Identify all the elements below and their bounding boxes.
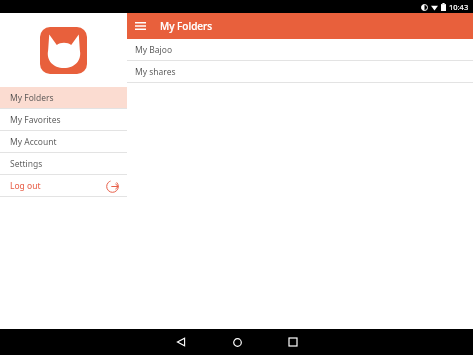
other: Log out xyxy=(105,179,119,193)
staticText: My Folders xyxy=(160,19,213,33)
button[interactable]: Open navigation menu xyxy=(127,13,153,39)
button[interactable]: Settings xyxy=(0,153,127,174)
staticText: Log out xyxy=(10,180,41,192)
staticText: My Folders xyxy=(10,92,54,104)
staticText: Settings xyxy=(10,158,43,170)
button[interactable]: My Account xyxy=(0,131,127,152)
button[interactable]: My Bajoo xyxy=(127,39,473,60)
button[interactable]: Home xyxy=(224,329,250,355)
staticText: My Account xyxy=(10,136,57,148)
button[interactable]: My Favorites xyxy=(0,109,127,130)
button[interactable]: My Folders xyxy=(0,87,127,108)
button[interactable]: My shares xyxy=(127,61,473,82)
staticText: My shares xyxy=(135,66,176,78)
button[interactable]: Back xyxy=(168,329,194,355)
staticText: My Favorites xyxy=(10,114,61,126)
staticText: My Bajoo xyxy=(135,44,173,56)
button[interactable]: Recent apps xyxy=(280,329,306,355)
button[interactable]: Log out xyxy=(0,175,127,196)
staticText: 10:43 xyxy=(449,2,469,12)
